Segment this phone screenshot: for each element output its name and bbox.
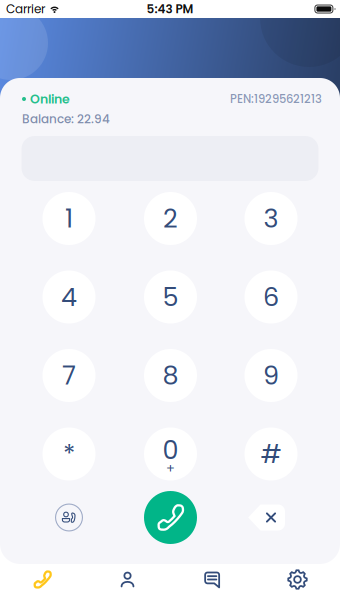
staticText: 2: [163, 201, 178, 236]
staticText: Carrier: [6, 1, 45, 17]
button[interactable]: Call: [144, 491, 197, 544]
button[interactable]: Settings: [255, 564, 340, 604]
staticText: 5: [162, 279, 178, 315]
button[interactable]: Contacts: [85, 564, 170, 604]
button[interactable]: 8: [144, 349, 197, 402]
staticText: 0: [162, 432, 178, 468]
button[interactable]: Messages: [170, 564, 255, 604]
staticText: 3: [263, 201, 278, 236]
staticText: +: [166, 459, 175, 477]
button[interactable]: 5: [144, 270, 197, 323]
button[interactable]: 4: [42, 270, 95, 323]
button[interactable]: 2: [144, 192, 197, 245]
button[interactable]: 3: [244, 192, 297, 245]
button[interactable]: #: [244, 427, 297, 480]
staticText: Balance: 22.94: [22, 111, 110, 127]
staticText: 9: [263, 358, 279, 393]
button[interactable]: 7: [42, 349, 95, 402]
button[interactable]: Dialer: [0, 564, 85, 604]
staticText: 6: [263, 279, 279, 315]
button[interactable]: Contacts: [42, 491, 95, 544]
staticText: #: [260, 436, 281, 472]
staticText: 8: [162, 358, 178, 393]
staticText: Online: [30, 90, 70, 108]
staticText: 1: [65, 201, 73, 236]
staticText: PEN:19295621213: [230, 91, 322, 107]
button[interactable]: 9: [244, 349, 297, 402]
staticText: 7: [62, 358, 76, 393]
button[interactable]: 6: [244, 270, 297, 323]
staticText: *: [63, 436, 75, 472]
button[interactable]: 1: [42, 192, 95, 245]
button[interactable]: 0: [144, 427, 197, 480]
staticText: 5:43 PM: [146, 1, 193, 17]
staticText: 4: [61, 279, 77, 315]
button[interactable]: *: [42, 427, 95, 480]
button[interactable]: Delete: [239, 491, 292, 544]
